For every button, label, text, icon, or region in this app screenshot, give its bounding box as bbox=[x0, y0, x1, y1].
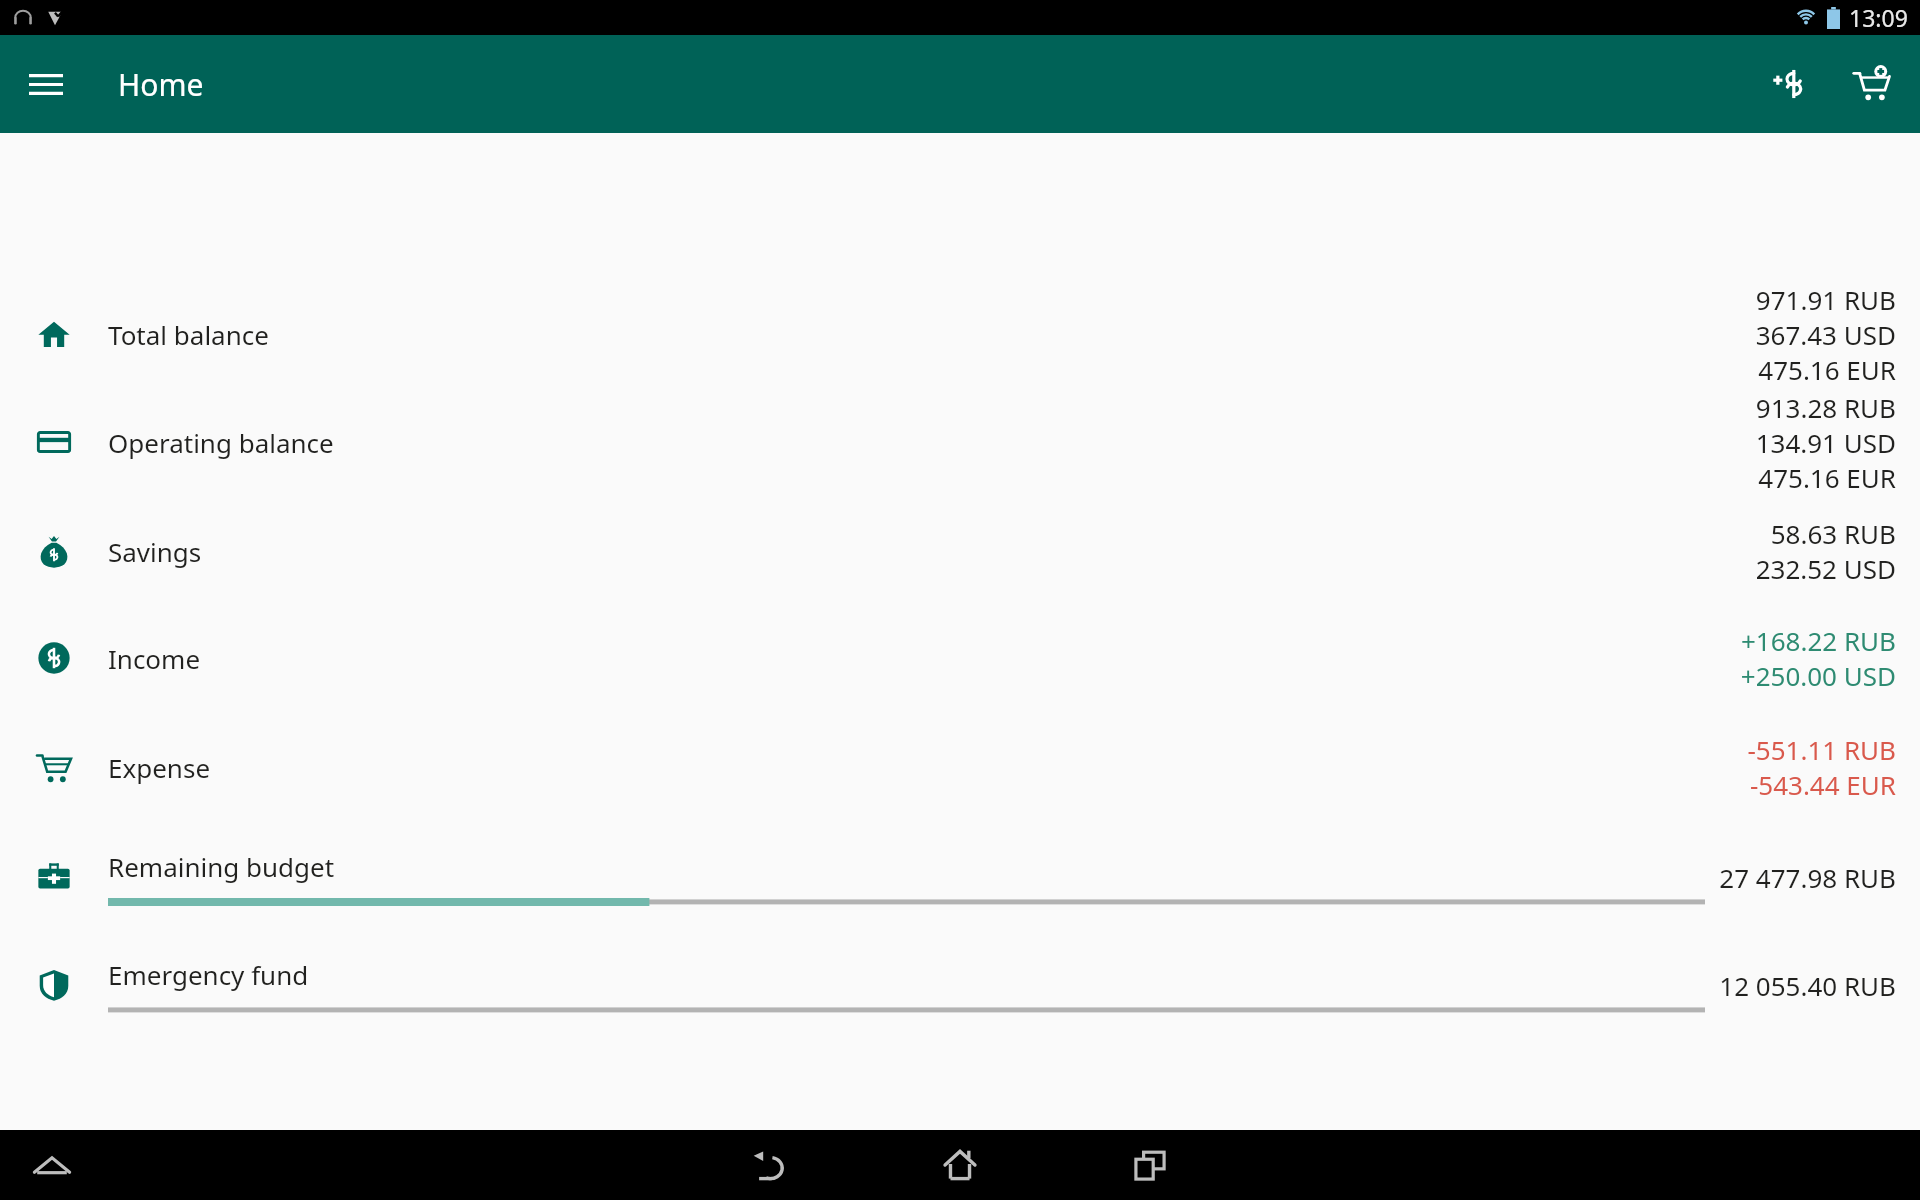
staticText: Income bbox=[108, 641, 201, 676]
staticText: +250.00 USD bbox=[1740, 658, 1896, 693]
staticText: 475.16 EUR bbox=[1758, 352, 1896, 387]
staticText: Operating balance bbox=[108, 425, 334, 460]
staticText: Expense bbox=[108, 750, 211, 785]
staticText: Emergency fund bbox=[108, 957, 309, 992]
button[interactable]: Savings bbox=[0, 497, 1920, 605]
button[interactable]: Income bbox=[0, 604, 1920, 712]
button[interactable]: Total balance bbox=[0, 280, 1920, 388]
staticText: 134.91 USD bbox=[1755, 425, 1896, 460]
staticText: Remaining budget bbox=[108, 849, 335, 884]
staticText: -551.11 RUB bbox=[1747, 732, 1896, 767]
staticText: 13:09 bbox=[1849, 2, 1908, 33]
button[interactable]: Remaining budget bbox=[0, 823, 1920, 931]
button[interactable]: Emergency fund bbox=[0, 931, 1920, 1039]
button[interactable]: Add income bbox=[1758, 52, 1822, 116]
button[interactable]: Expand navigation bbox=[24, 1137, 80, 1193]
staticText: 12 055.40 RUB bbox=[1719, 968, 1896, 1003]
staticText: 58.63 RUB bbox=[1770, 516, 1896, 551]
staticText: Total balance bbox=[108, 317, 269, 352]
button[interactable]: Expense bbox=[0, 713, 1920, 821]
button[interactable]: Back bbox=[728, 1130, 812, 1200]
staticText: Savings bbox=[108, 534, 202, 569]
staticText: 971.91 RUB bbox=[1755, 282, 1896, 317]
staticText: 27 477.98 RUB bbox=[1719, 860, 1896, 895]
staticText: 475.16 EUR bbox=[1758, 460, 1896, 495]
button[interactable]: Recent apps bbox=[1108, 1130, 1192, 1200]
button[interactable]: Open navigation menu bbox=[22, 60, 70, 108]
button[interactable]: Add expense bbox=[1840, 52, 1904, 116]
staticText: +168.22 RUB bbox=[1740, 623, 1896, 658]
staticText: 232.52 USD bbox=[1755, 551, 1896, 586]
staticText: -543.44 EUR bbox=[1749, 767, 1896, 802]
staticText: Home bbox=[118, 64, 204, 105]
button[interactable]: Operating balance bbox=[0, 388, 1920, 496]
staticText: 367.43 USD bbox=[1755, 317, 1896, 352]
button[interactable]: Home bbox=[918, 1130, 1002, 1200]
staticText: 913.28 RUB bbox=[1755, 390, 1896, 425]
